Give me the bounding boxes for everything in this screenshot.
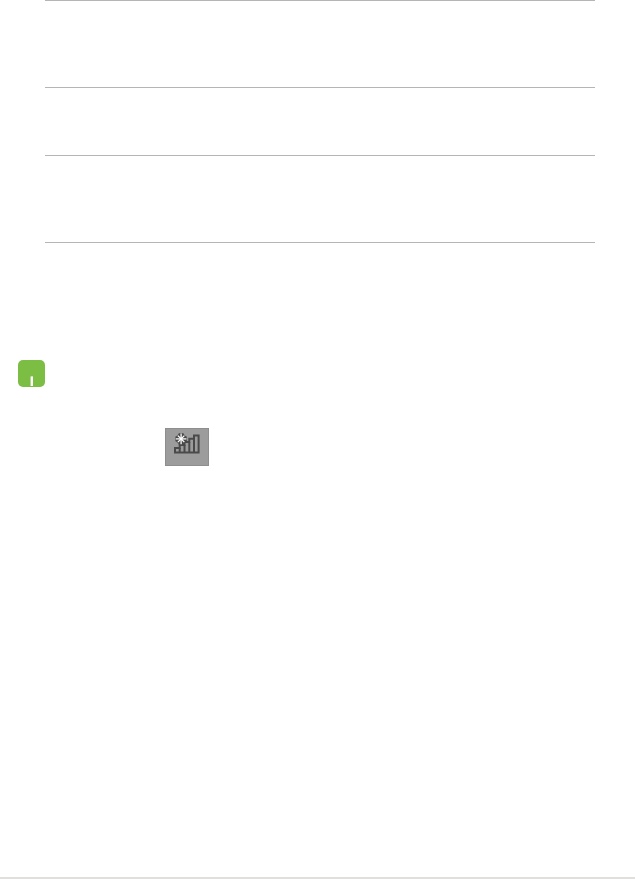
button[interactable]: Image failed to load (165, 428, 209, 466)
button[interactable]: App badge (18, 360, 45, 387)
